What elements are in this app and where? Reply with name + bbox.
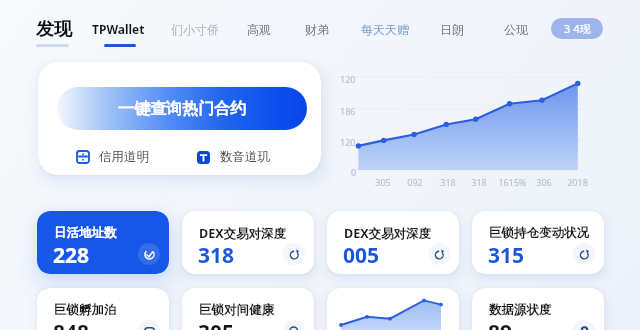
staticText: 120 xyxy=(340,136,356,148)
staticText: 305 xyxy=(198,318,235,330)
staticText: 巨锁孵加泊 xyxy=(54,302,117,318)
button[interactable]: 日朗 xyxy=(440,22,464,37)
staticText: 318 xyxy=(440,176,456,188)
button[interactable] xyxy=(327,288,459,330)
staticText: 092 xyxy=(407,176,423,188)
button[interactable]: 更多 xyxy=(283,320,305,330)
staticText: 318 xyxy=(471,176,487,188)
staticText: 3 4现 xyxy=(564,21,591,36)
staticText: 305 xyxy=(375,176,391,188)
button[interactable]: 更多 xyxy=(138,243,160,265)
staticText: 日活地址数 xyxy=(54,225,117,241)
button[interactable]: 高观 xyxy=(247,22,271,37)
button[interactable]: 巨锁对间健康 xyxy=(182,288,314,330)
staticText: 318 xyxy=(198,241,235,270)
staticText: 228 xyxy=(53,241,90,270)
staticText: 848 xyxy=(53,318,90,330)
staticText: 306 xyxy=(536,176,552,188)
button[interactable]: TPWallet xyxy=(92,21,145,37)
button[interactable]: 数音道玑 xyxy=(197,149,270,165)
staticText: 1615% xyxy=(498,176,527,188)
button[interactable]: DEX交易对深度 xyxy=(327,211,459,274)
staticText: 315 xyxy=(488,241,525,270)
button[interactable]: 更多 xyxy=(138,320,160,330)
staticText: 巨锁持仓变动状况 xyxy=(489,225,589,241)
staticText: TPWallet xyxy=(92,21,145,37)
button[interactable]: 们小寸侨 xyxy=(171,22,219,37)
staticText: 数音道玑 xyxy=(220,149,270,165)
staticText: 公现 xyxy=(504,22,528,37)
staticText: 89 xyxy=(488,318,513,330)
staticText: 数据源状度 xyxy=(489,302,552,318)
staticText: 186 xyxy=(340,105,356,117)
button[interactable]: 更多 xyxy=(283,243,305,265)
staticText: 005 xyxy=(343,241,380,270)
staticText: 0 xyxy=(351,166,357,178)
button[interactable]: 公现 xyxy=(504,22,528,37)
button[interactable]: 日活地址数 xyxy=(37,211,169,274)
staticText: DEX交易对深度 xyxy=(199,225,287,242)
button[interactable]: 巨锁持仓变动状况 xyxy=(472,211,604,274)
button[interactable]: 3 4现 xyxy=(551,18,603,39)
staticText: 每天天赠 xyxy=(361,22,409,37)
button[interactable]: 信用道明 xyxy=(77,149,149,165)
staticText: 财弟 xyxy=(305,22,329,37)
staticText: 发现 xyxy=(36,18,72,41)
button[interactable]: 巨锁孵加泊 xyxy=(37,288,169,330)
button[interactable]: 一键查询热门合约 xyxy=(57,87,307,130)
button[interactable]: 更多 xyxy=(573,320,595,330)
button[interactable]: 更多 xyxy=(573,243,595,265)
button[interactable]: 每天天赠 xyxy=(361,22,409,37)
button[interactable]: 财弟 xyxy=(305,22,329,37)
staticText: 信用道明 xyxy=(99,149,149,165)
staticText: 2018 xyxy=(567,176,588,188)
staticText: 们小寸侨 xyxy=(171,22,219,37)
button[interactable]: 数据源状度 xyxy=(472,288,604,330)
staticText: 120 xyxy=(340,73,356,85)
staticText: 日朗 xyxy=(440,22,464,37)
staticText: DEX交易对深度 xyxy=(344,225,432,242)
button[interactable]: DEX交易对深度 xyxy=(182,211,314,274)
button[interactable]: 更多 xyxy=(428,243,450,265)
staticText: 一键查询热门合约 xyxy=(118,99,246,119)
staticText: 巨锁对间健康 xyxy=(199,302,274,318)
button[interactable]: 发现 xyxy=(36,18,72,41)
staticText: 高观 xyxy=(247,22,271,37)
